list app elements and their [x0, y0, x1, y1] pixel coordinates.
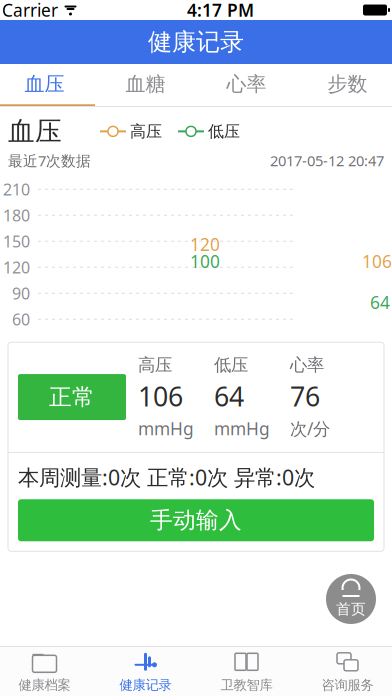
staticText: 次/分 [290, 417, 330, 440]
staticText: 最近7次数据 [8, 151, 91, 170]
button[interactable]: 血糖 [95, 64, 196, 106]
staticText: 76 [290, 378, 320, 414]
button[interactable]: 心率 [196, 64, 297, 106]
staticText: 卫教智库 [220, 677, 272, 693]
staticText: 健康档案 [18, 677, 70, 693]
button[interactable]: 首页 [326, 574, 376, 624]
staticText: 高压 [138, 354, 172, 375]
staticText: 低压 [208, 122, 240, 141]
staticText: 90 [12, 283, 30, 304]
staticText: 血糖 [125, 72, 165, 96]
staticText: 150 [3, 231, 30, 252]
button[interactable]: 卫教智库 [196, 647, 297, 696]
staticText: 180 [3, 205, 30, 226]
button[interactable]: 正常 [18, 374, 126, 420]
staticText: 120 [3, 257, 30, 278]
staticText: mmHg [138, 417, 194, 440]
staticText: 健康记录 [148, 27, 244, 57]
staticText: 正常 [49, 383, 95, 411]
staticText: 低压 [214, 354, 248, 375]
staticText: 60 [12, 309, 30, 330]
button[interactable]: 血压 [0, 64, 95, 106]
staticText: 100 [190, 250, 220, 273]
staticText: 本周测量:0次 正常:0次 异常:0次 [18, 463, 315, 491]
staticText: 心率 [290, 354, 324, 375]
staticText: 120 [190, 233, 220, 256]
button[interactable]: 手动输入 [8, 499, 384, 541]
staticText: 首页 [336, 600, 366, 618]
staticText: 210 [3, 179, 30, 200]
button[interactable]: 健康档案 [0, 647, 95, 696]
staticText: 106 [362, 250, 392, 273]
staticText: 4:17 PM [187, 0, 254, 21]
button[interactable]: 步数 [297, 64, 392, 106]
staticText: 健康记录 [119, 677, 171, 693]
staticText: mmHg [214, 417, 270, 440]
staticText: 2017-05-12 20:47 [270, 151, 384, 170]
button[interactable]: 健康记录 [95, 647, 196, 696]
staticText: 步数 [327, 72, 367, 96]
staticText: 106 [138, 378, 183, 414]
staticText: 血压 [24, 72, 64, 96]
staticText: 64 [370, 291, 390, 314]
button[interactable]: 咨询服务 [297, 647, 392, 696]
staticText: 64 [214, 378, 244, 414]
staticText: Carrier [2, 0, 58, 21]
staticText: 高压 [130, 122, 162, 141]
staticText: 血压 [8, 115, 62, 148]
staticText: 咨询服务 [321, 677, 373, 693]
staticText: 手动输入 [150, 506, 242, 534]
staticText: 心率 [226, 72, 266, 96]
